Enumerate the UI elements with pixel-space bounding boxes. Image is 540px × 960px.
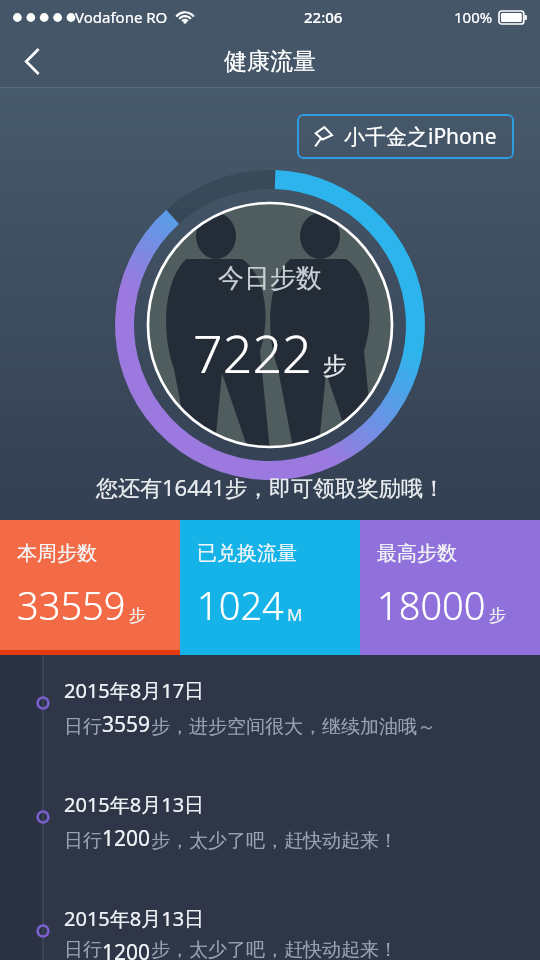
staticText: 步，进步空间很大，继续加油哦～ <box>151 715 436 739</box>
button[interactable]: 2015年8月17日 <box>0 655 540 739</box>
staticText: 1024 <box>197 579 284 631</box>
staticText: 健康流量 <box>224 47 316 76</box>
staticText: 您还有16441步，即可领取奖励哦！ <box>96 472 445 502</box>
staticText: 步 <box>489 605 506 626</box>
staticText: 7222 <box>193 317 312 388</box>
staticText: 3559 <box>102 710 151 739</box>
staticText: 最高步数 <box>377 541 457 566</box>
staticText: 2015年8月17日 <box>64 677 205 704</box>
staticText: 2015年8月13日 <box>64 791 205 818</box>
staticText: 2015年8月13日 <box>64 905 205 932</box>
staticText: Vodafone RO <box>75 7 168 27</box>
staticText: 本周步数 <box>17 541 97 566</box>
button[interactable]: 2015年8月13日 <box>0 739 540 853</box>
button[interactable]: 本周步数 <box>0 520 180 650</box>
staticText: 步 <box>129 605 146 626</box>
button[interactable]: 最高步数 <box>360 520 540 650</box>
staticText: 1200 <box>102 938 151 960</box>
button[interactable]: 小千金之iPhone <box>297 114 514 159</box>
button[interactable]: 2015年8月13日 <box>0 853 540 960</box>
staticText: 今日步数 <box>218 262 322 295</box>
staticText: 小千金之iPhone <box>344 122 497 151</box>
button[interactable]: Back <box>0 34 64 88</box>
staticText: 33559 <box>17 579 126 631</box>
staticText: 日行 <box>64 938 102 960</box>
staticText: 100% <box>454 7 493 27</box>
staticText: 18000 <box>377 579 486 631</box>
staticText: M <box>287 603 303 626</box>
staticText: 步，太少了吧，赶快动起来！ <box>151 829 398 853</box>
button[interactable]: 已兑换流量 <box>180 520 360 650</box>
staticText: 日行 <box>64 715 102 739</box>
staticText: 已兑换流量 <box>197 541 297 566</box>
staticText: 1200 <box>102 824 151 853</box>
staticText: 步，太少了吧，赶快动起来！ <box>151 938 398 960</box>
staticText: 22:06 <box>304 7 343 27</box>
staticText: 日行 <box>64 829 102 853</box>
staticText: 步 <box>323 351 347 381</box>
